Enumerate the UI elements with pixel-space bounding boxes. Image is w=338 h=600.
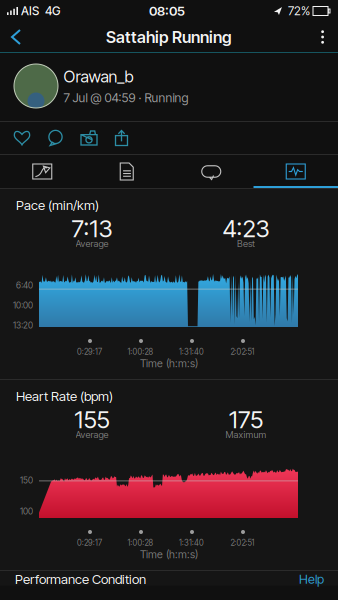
button[interactable]: Like bbox=[0, 122, 39, 154]
staticText: 2:02:51 bbox=[230, 538, 254, 548]
button[interactable]: More options bbox=[305, 22, 338, 52]
staticText: 4:23 bbox=[222, 214, 269, 243]
staticText: 100 bbox=[20, 506, 33, 516]
button[interactable]: Share bbox=[106, 122, 137, 153]
staticText: 13:20 bbox=[13, 320, 33, 330]
button[interactable]: Details bbox=[84, 155, 169, 188]
staticText: Maximum bbox=[225, 429, 266, 440]
staticText: Average bbox=[75, 429, 108, 440]
button[interactable]: Comment bbox=[39, 122, 72, 153]
staticText: 72% bbox=[282, 4, 310, 18]
staticText: 1:00:28 bbox=[127, 538, 153, 548]
staticText: Time (h:m:s) bbox=[140, 548, 198, 561]
staticText: Orawan_b bbox=[63, 67, 133, 86]
staticText: 08:05 bbox=[149, 3, 185, 19]
staticText: 155 bbox=[74, 405, 109, 434]
staticText: 2:02:51 bbox=[230, 347, 254, 357]
staticText: 1:31:40 bbox=[179, 347, 204, 357]
staticText: 1:31:40 bbox=[179, 538, 204, 548]
button[interactable]: Photos bbox=[72, 122, 106, 154]
staticText: Performance Condition bbox=[15, 571, 146, 587]
button[interactable]: Charts bbox=[253, 155, 338, 188]
staticText: 6:40 bbox=[16, 280, 33, 290]
staticText: Pace (min/km) bbox=[16, 197, 99, 213]
staticText: Time (h:m:s) bbox=[140, 357, 198, 370]
staticText: 175 bbox=[229, 405, 263, 434]
staticText: 10:00 bbox=[13, 300, 33, 310]
staticText: 0:29:17 bbox=[77, 347, 102, 357]
button[interactable]: Performance Condition bbox=[0, 571, 338, 585]
button[interactable]: Back bbox=[0, 22, 36, 52]
staticText: 1:00:28 bbox=[127, 347, 153, 357]
staticText: Average bbox=[75, 238, 108, 249]
staticText: Heart Rate (bpm) bbox=[16, 388, 113, 404]
staticText: Sattahip Running bbox=[106, 27, 232, 47]
staticText: 7 Jul @ 04:59 · Running bbox=[63, 90, 188, 105]
staticText: 150 bbox=[20, 475, 33, 485]
staticText: Best bbox=[237, 238, 255, 249]
staticText: Help bbox=[299, 571, 324, 587]
button[interactable]: Laps bbox=[169, 155, 253, 188]
staticText: 7:13 bbox=[71, 214, 112, 243]
button[interactable]: Map bbox=[0, 155, 84, 188]
staticText: AIS 4G bbox=[18, 4, 60, 18]
staticText: 0:29:17 bbox=[77, 538, 102, 548]
